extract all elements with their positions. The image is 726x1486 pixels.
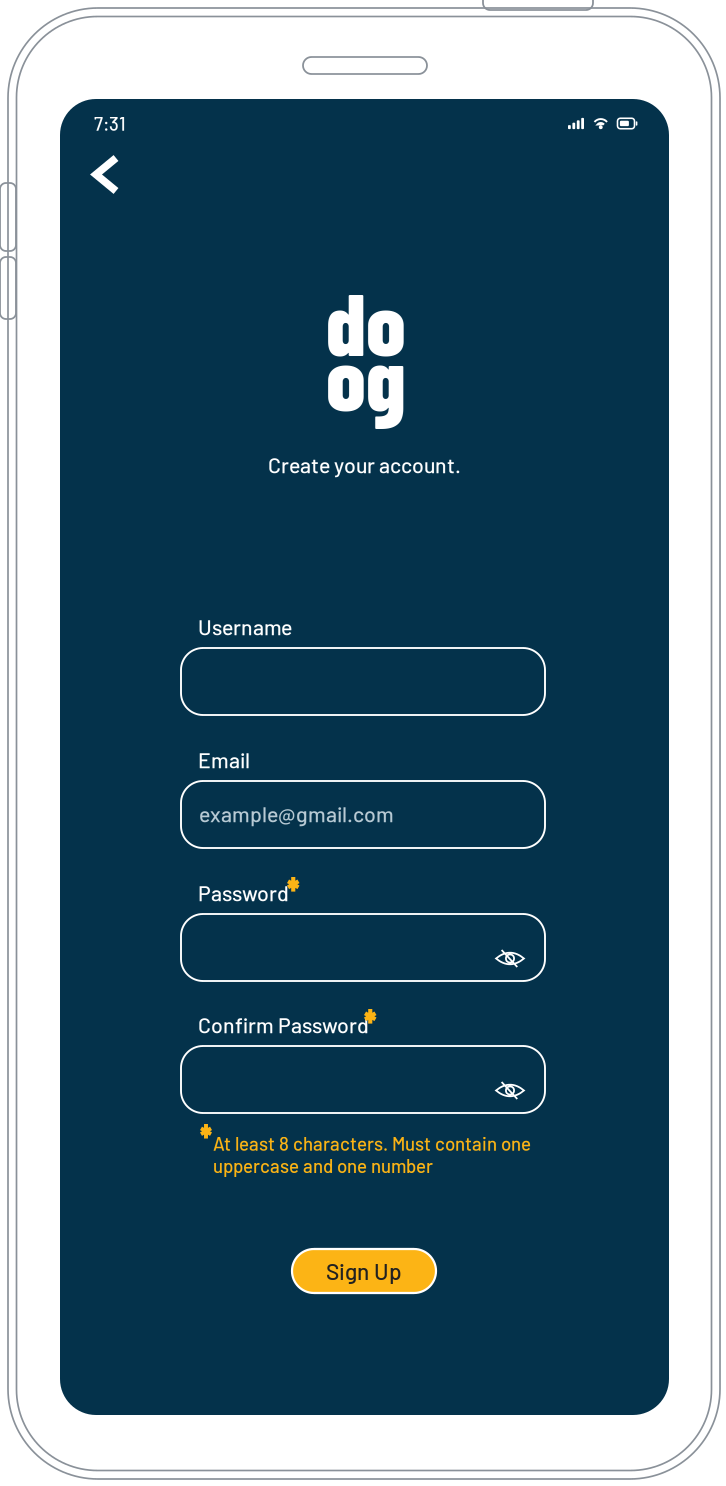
staticText: Password xyxy=(198,880,289,906)
button[interactable]: Show password xyxy=(482,936,538,981)
button[interactable]: Back xyxy=(76,144,136,206)
staticText: Create your account. xyxy=(268,452,461,478)
staticText: Sign Up xyxy=(326,1257,402,1285)
button[interactable]: Sign Up xyxy=(292,1249,436,1293)
staticText: Confirm Password xyxy=(198,1012,369,1038)
staticText: og xyxy=(326,323,406,429)
staticText: At least 8 characters. Must contain one … xyxy=(213,1132,531,1177)
staticText: example@gmail.com xyxy=(199,801,394,827)
staticText: 7:31 xyxy=(94,112,126,134)
staticText: Email xyxy=(198,747,250,773)
staticText: Username xyxy=(198,614,292,640)
button[interactable]: Show password xyxy=(482,1068,538,1113)
staticText: do xyxy=(326,268,406,374)
